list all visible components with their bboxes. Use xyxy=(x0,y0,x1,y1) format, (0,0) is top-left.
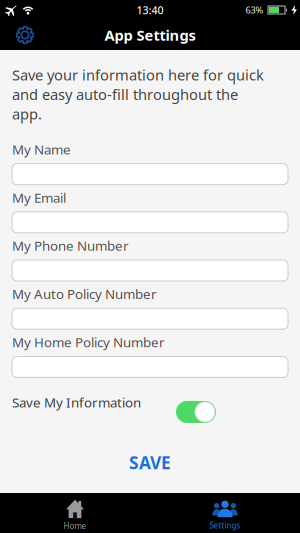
staticText: Save your information here for quick and… xyxy=(12,65,264,123)
button[interactable]: Settings xyxy=(150,493,300,533)
staticText: My Home Policy Number xyxy=(12,333,165,351)
staticText: My Email xyxy=(12,189,66,206)
button[interactable]: Home xyxy=(0,493,150,533)
staticText: My Phone Number xyxy=(12,237,129,254)
staticText: Home xyxy=(63,520,86,531)
staticText: My Auto Policy Number xyxy=(12,285,157,303)
button[interactable]: My Name xyxy=(12,164,288,185)
button[interactable]: Save My Information xyxy=(12,393,288,423)
staticText: App Settings xyxy=(104,25,195,45)
button[interactable]: My Email xyxy=(12,212,288,233)
staticText: Settings xyxy=(209,520,240,531)
button[interactable]: My Auto Policy Number xyxy=(12,308,288,329)
button[interactable]: SAVE xyxy=(12,451,288,474)
button[interactable]: My Home Policy Number xyxy=(12,356,288,377)
button[interactable]: My Phone Number xyxy=(12,260,288,281)
staticText: My Name xyxy=(12,140,71,158)
staticText: 63% xyxy=(245,4,263,16)
staticText: 13:40 xyxy=(136,3,163,17)
staticText: Save My Information xyxy=(12,393,141,411)
staticText: SAVE xyxy=(129,451,171,474)
button[interactable]: Settings xyxy=(0,20,34,50)
